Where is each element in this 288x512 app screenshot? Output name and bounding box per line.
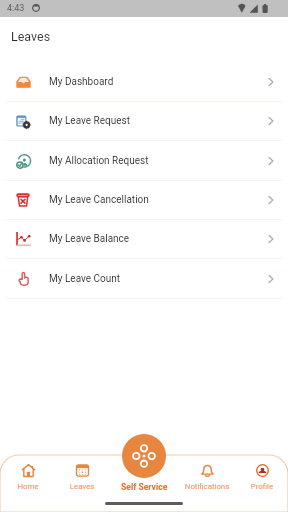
staticText: Notifications (179, 482, 235, 491)
button[interactable]: My Leave Count (0, 259, 288, 298)
staticText: Leaves (11, 29, 51, 44)
staticText: Leaves (54, 482, 110, 491)
button[interactable]: Notifications (179, 458, 235, 494)
staticText: 4:43 (7, 3, 25, 14)
staticText: My Leave Cancellation (49, 194, 149, 206)
button[interactable]: Leaves (54, 458, 110, 494)
button[interactable]: Self Service (121, 482, 168, 492)
staticText: My Dashboard (49, 76, 114, 88)
button[interactable]: Self Service (122, 434, 166, 478)
button[interactable]: Home (0, 458, 56, 494)
staticText: Home (0, 482, 56, 491)
staticText: Profile (234, 482, 288, 491)
button[interactable]: My Dashboard (0, 62, 288, 101)
button[interactable]: My Leave Cancellation (0, 181, 288, 219)
staticText: My Leave Balance (49, 233, 130, 245)
button[interactable]: My Leave Request (0, 102, 288, 140)
button[interactable]: My Leave Balance (0, 220, 288, 258)
button[interactable]: My Allocation Request (0, 141, 288, 180)
button[interactable]: Profile (234, 458, 288, 494)
staticText: My Leave Count (49, 273, 121, 285)
staticText: My Allocation Request (49, 155, 149, 167)
staticText: My Leave Request (49, 115, 130, 127)
